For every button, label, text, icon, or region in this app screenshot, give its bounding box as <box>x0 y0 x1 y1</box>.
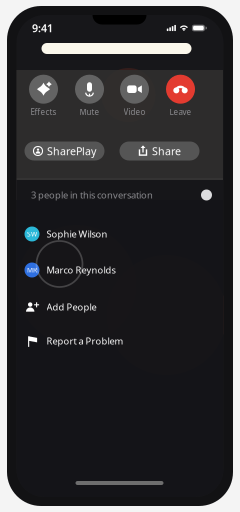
staticText: Video <box>123 107 145 117</box>
staticText: Marco Reynolds <box>46 264 115 276</box>
staticText: Add People <box>46 301 96 313</box>
staticText: Mute <box>79 107 99 117</box>
button[interactable]: MR <box>24 254 200 286</box>
staticText: 9:41 <box>32 21 53 35</box>
staticText: Leave <box>169 107 191 117</box>
button[interactable]: Mute <box>75 75 104 117</box>
staticText: SW <box>27 230 37 238</box>
button[interactable]: Leave <box>166 75 195 117</box>
button[interactable]: SharePlay <box>24 141 104 160</box>
staticText: Report a Problem <box>46 335 123 347</box>
button[interactable]: Effects <box>29 75 58 117</box>
staticText: MR <box>27 266 37 274</box>
button[interactable]: Add People <box>24 291 200 323</box>
staticText: SharePlay <box>47 144 96 158</box>
button[interactable]: Info <box>201 189 212 200</box>
button[interactable]: SW <box>24 218 200 250</box>
button[interactable]: Share <box>119 141 199 160</box>
button[interactable]: Report a Problem <box>24 325 200 357</box>
button[interactable]: Video <box>120 75 149 117</box>
staticText: 3 people in this conversation <box>31 189 153 201</box>
staticText: Share <box>152 144 181 158</box>
staticText: Sophie Wilson <box>46 228 107 240</box>
staticText: Effects <box>30 107 56 117</box>
